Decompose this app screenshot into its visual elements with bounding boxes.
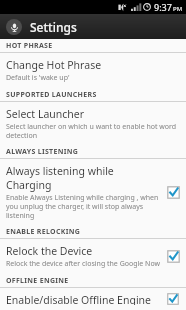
staticText: Settings	[30, 19, 77, 35]
staticText: Change Hot Phrase	[6, 58, 102, 72]
staticText: Select launcher on which u want to enabl…	[6, 122, 182, 140]
button[interactable]: Always listening while Charging	[0, 159, 186, 225]
staticText: 9:37	[154, 1, 172, 13]
other: App icon	[6, 19, 22, 35]
staticText: SUPPORTED LAUNCHERS	[6, 90, 97, 100]
button[interactable]: Relock the Device	[0, 239, 186, 274]
staticText: ALWAYS LISTENING	[6, 147, 79, 157]
staticText: Relock the Device	[6, 244, 93, 258]
staticText: Enable Always Listening while charging ,…	[6, 193, 161, 220]
staticText: Enable/disable Offline Engine	[6, 293, 152, 305]
button[interactable]: Select Launcher	[0, 102, 186, 145]
staticText: OFFLINE ENGINE	[6, 276, 69, 286]
button[interactable]: Enable/disable Offline Engine	[0, 288, 186, 310]
button[interactable]: Toggle Relock the Device	[165, 248, 182, 265]
button[interactable]: Toggle Enable/disable Offline Engine	[165, 293, 182, 305]
staticText: Always listening while Charging	[6, 164, 161, 192]
staticText: Select Launcher	[6, 107, 85, 121]
button[interactable]: Change Hot Phrase	[0, 53, 186, 88]
staticText: PM	[173, 5, 183, 13]
button[interactable]: Toggle Always listening while Charging	[165, 184, 182, 201]
staticText: HOT PHRASE	[6, 41, 53, 51]
staticText: Default is 'wake up'	[6, 73, 70, 83]
staticText: Relock the device after closing the Goog…	[6, 259, 160, 269]
staticText: ENABLE RELOCKING	[6, 227, 81, 237]
